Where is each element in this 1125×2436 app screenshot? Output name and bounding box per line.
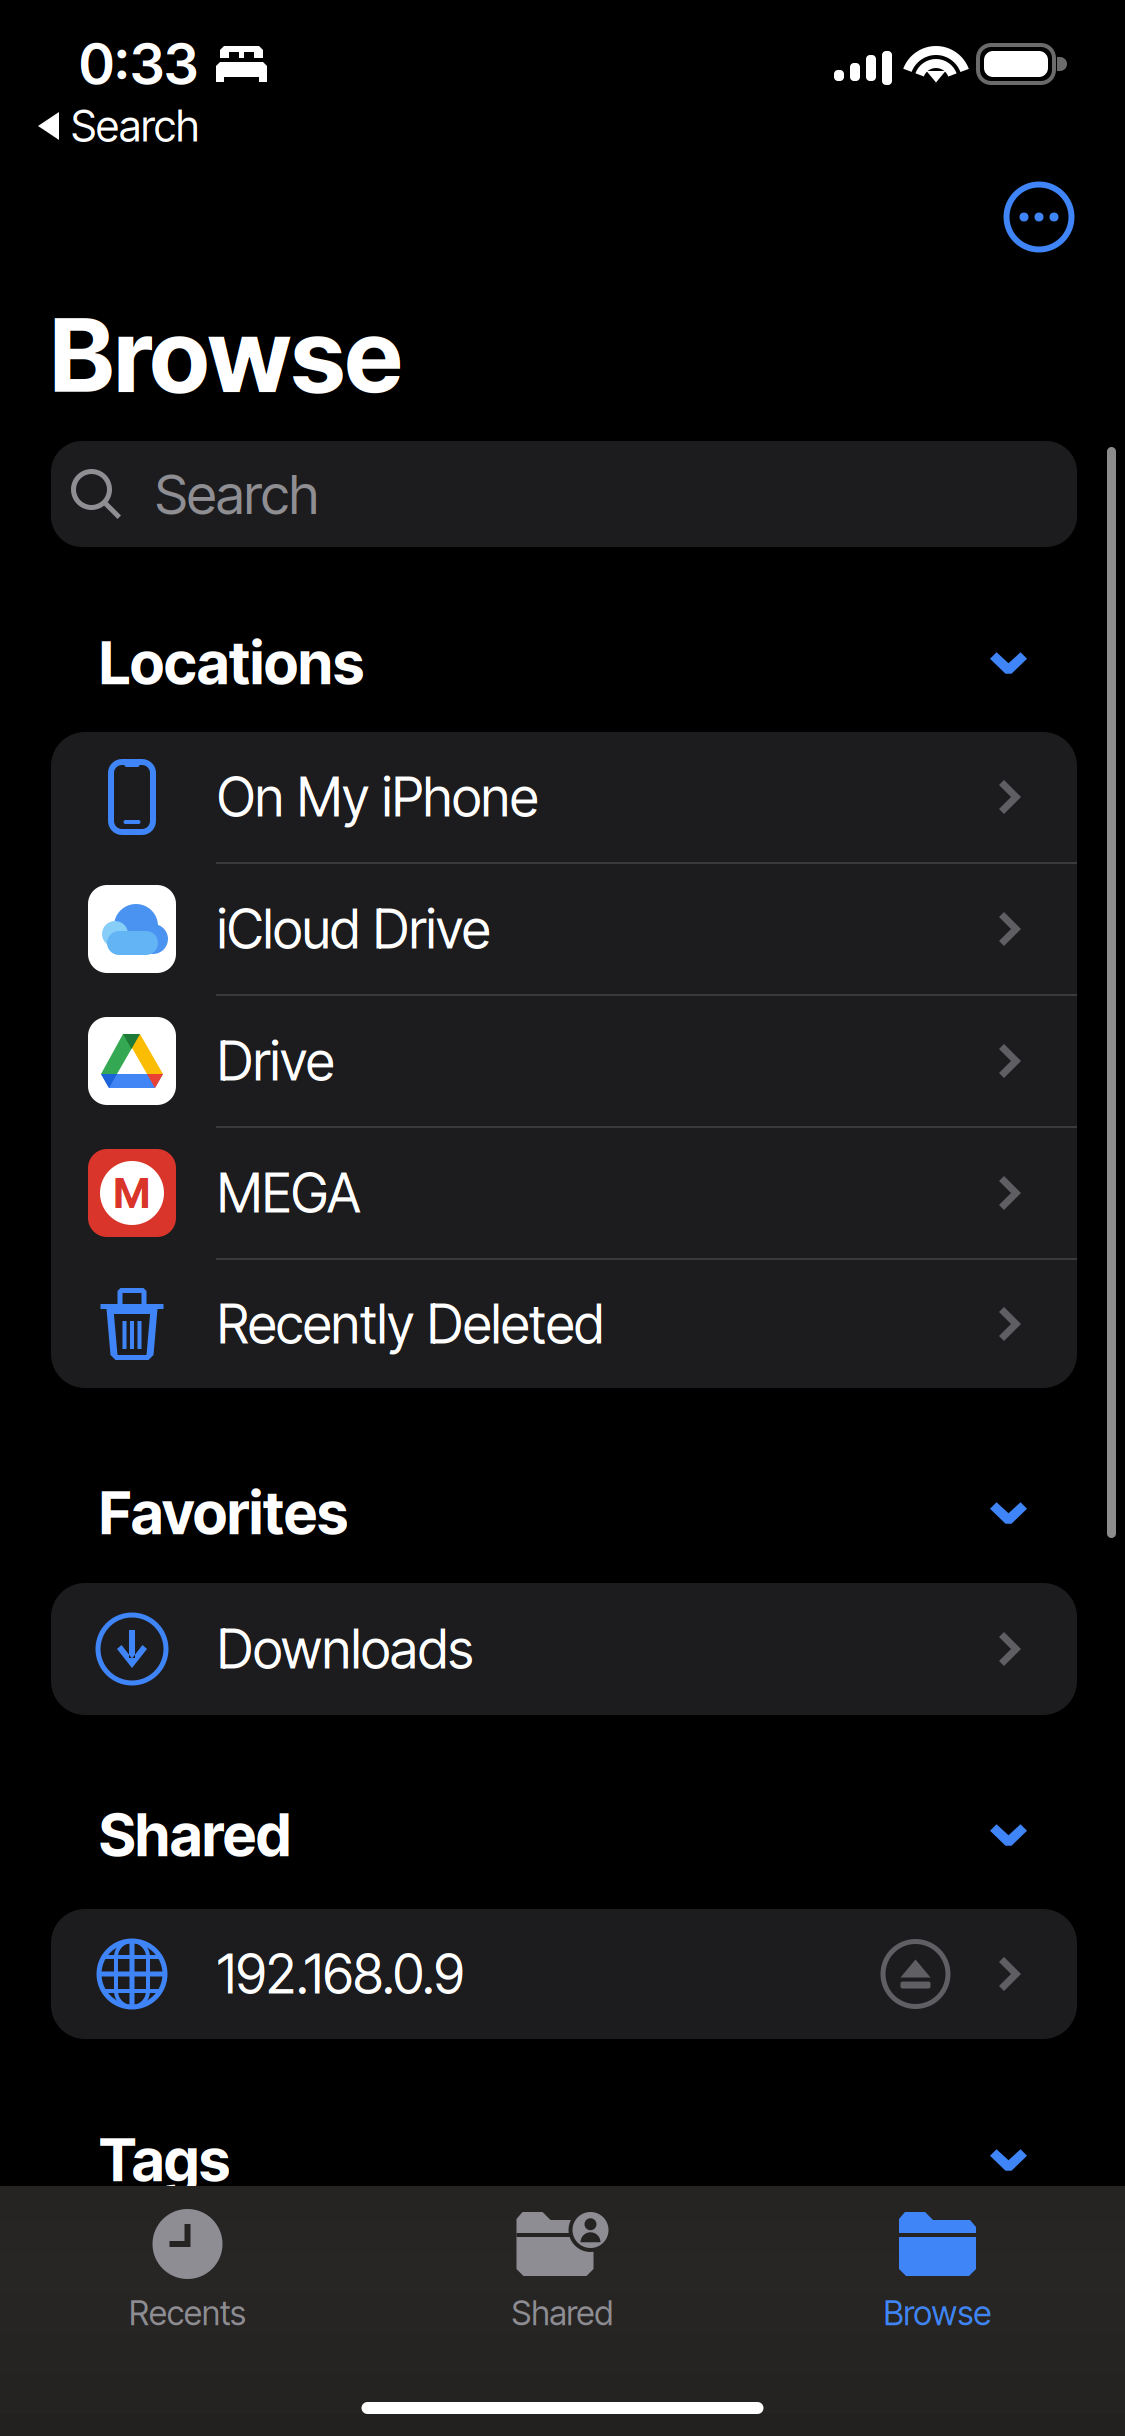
staticText: Recents [129,2293,246,2333]
staticText: Favorites [99,1477,348,1548]
staticText: MEGA [217,1161,361,1225]
staticText: 192.168.0.9 [217,1942,464,2006]
staticText: 0:33 [79,30,198,98]
staticText: Downloads [217,1617,473,1681]
button[interactable]: Search [51,441,1077,547]
staticText: Search [71,100,199,152]
button[interactable]: M [51,1128,1077,1258]
button[interactable]: 192.168.0.9 [51,1909,1077,2039]
staticText: iCloud Drive [217,897,490,961]
button[interactable]: Recently Deleted [51,1260,1077,1388]
staticText: Drive [217,1029,334,1093]
staticText: M [113,1168,150,1218]
button[interactable]: Browse [750,2186,1125,2333]
staticText: Tags [99,2124,230,2195]
staticText: Shared [99,1799,291,1870]
button[interactable]: Collapse Tags [968,2127,1049,2193]
button[interactable]: Collapse Shared [968,1802,1049,1868]
staticText: Browse [883,2293,991,2333]
staticText: Search [155,461,319,527]
button[interactable]: Drive [51,996,1077,1126]
staticText: Shared [511,2293,613,2333]
button[interactable]: On My iPhone [51,732,1077,862]
button[interactable]: iCloud Drive [51,864,1077,994]
button[interactable]: More [989,167,1089,267]
staticText: Locations [99,627,364,698]
button[interactable]: Downloads [51,1583,1077,1715]
button[interactable]: Shared [375,2186,750,2333]
button[interactable]: Recents [0,2186,375,2333]
button[interactable]: Collapse Favorites [968,1480,1049,1546]
staticText: On My iPhone [217,765,538,829]
button[interactable]: Collapse Locations [968,630,1049,696]
button[interactable]: Search [0,100,223,152]
staticText: Recently Deleted [217,1292,604,1356]
staticText: Browse [50,294,402,416]
